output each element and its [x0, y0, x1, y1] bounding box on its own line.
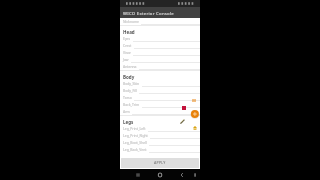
- button[interactable]: Crest: [120, 42, 200, 49]
- button[interactable]: Body: [120, 70, 200, 80]
- button[interactable]: More options: [190, 169, 200, 180]
- button[interactable]: Torso: [120, 94, 200, 101]
- button[interactable]: Leg_Print_Left: [120, 125, 200, 132]
- button[interactable]: Home: [193, 126, 197, 130]
- staticText: Back_Trim: [123, 102, 140, 107]
- staticText: Leg_Boot_Shell: [123, 140, 147, 145]
- button[interactable]: Recent apps: [133, 169, 143, 180]
- button[interactable]: Arm: [120, 108, 200, 115]
- button[interactable]: APPLY: [121, 158, 199, 168]
- button[interactable]: Edit: [180, 119, 185, 124]
- button[interactable]: Leg_Boot_Shell: [120, 139, 200, 146]
- staticText: 88: [192, 98, 197, 103]
- button[interactable]: Back: [177, 169, 187, 180]
- button[interactable]: Body_Skin: [120, 80, 200, 87]
- staticText: Antenna: [123, 64, 137, 69]
- staticText: Legs: [123, 119, 134, 125]
- button[interactable]: 88: [192, 98, 197, 103]
- button[interactable]: Jaw: [120, 56, 200, 63]
- button[interactable]: Add: [190, 110, 199, 119]
- staticText: WICO Exterior Console: [123, 10, 174, 16]
- staticText: Body_Skin: [123, 81, 140, 86]
- staticText: APPLY: [154, 160, 166, 165]
- staticText: Leg_Print_Right: [123, 133, 148, 138]
- staticText: Torso: [123, 95, 132, 100]
- button[interactable]: Nickname: [120, 18, 200, 25]
- button[interactable]: Leg_Back_Vent: [120, 146, 200, 153]
- button[interactable]: Visor: [120, 49, 200, 56]
- button[interactable]: Leg_Print_Right: [120, 132, 200, 139]
- staticText: Body: [123, 74, 135, 80]
- staticText: Crest: [123, 43, 132, 48]
- staticText: Visor: [123, 50, 131, 55]
- staticText: Arm: [123, 109, 130, 114]
- button[interactable]: Back_Trim: [120, 101, 200, 108]
- button[interactable]: Body_Fill: [120, 87, 200, 94]
- staticText: Jaw: [123, 57, 129, 62]
- button[interactable]: Legs: [120, 115, 200, 125]
- staticText: Body_Fill: [123, 88, 137, 93]
- staticText: Leg_Print_Left: [123, 126, 146, 131]
- staticText: Leg_Back_Vent: [123, 147, 147, 152]
- staticText: Head: [123, 29, 135, 35]
- staticText: Eyes: [123, 36, 131, 41]
- staticText: Nickname: [123, 19, 139, 24]
- button[interactable]: WICO Exterior Console: [120, 7, 200, 18]
- button[interactable]: Antenna: [120, 63, 200, 70]
- button[interactable]: Head: [120, 25, 200, 35]
- button[interactable]: Eyes: [120, 35, 200, 42]
- button[interactable]: Home: [155, 169, 165, 180]
